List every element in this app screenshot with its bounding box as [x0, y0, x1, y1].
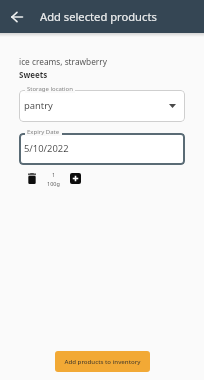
staticText: pantry	[24, 99, 53, 112]
staticText: 1	[52, 171, 56, 178]
staticText: Add products to inventory	[64, 357, 141, 365]
staticText: Storage location	[27, 85, 73, 93]
staticText: Add selected products	[40, 9, 157, 24]
staticText: Expiry Date	[27, 128, 60, 136]
button[interactable]: 5/10/2022	[19, 133, 185, 165]
staticText: Sweets	[19, 69, 48, 80]
staticText: 100g	[47, 180, 60, 187]
button[interactable]: Delete	[25, 173, 38, 186]
staticText: 5/10/2022	[24, 142, 69, 155]
staticText: ice creams, strawberry	[19, 56, 107, 67]
button[interactable]: Add	[69, 173, 82, 186]
button[interactable]: pantry	[19, 90, 185, 122]
button[interactable]: Add products to inventory	[55, 351, 150, 372]
button[interactable]: Back	[5, 5, 28, 28]
